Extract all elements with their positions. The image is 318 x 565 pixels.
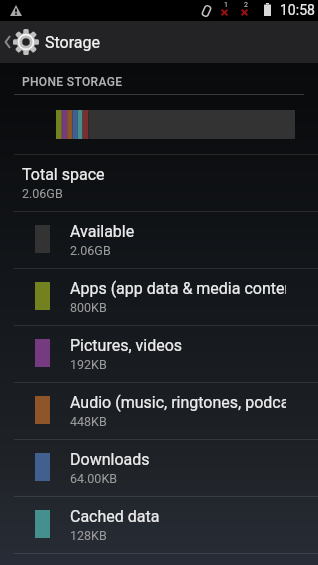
button[interactable]: Total space [0, 155, 318, 211]
staticText: Storage [45, 33, 100, 52]
staticText: 2.06GB [70, 243, 111, 258]
staticText: Cached data [70, 507, 160, 526]
staticText: Total space [22, 165, 105, 184]
staticText: 192KB [70, 357, 107, 372]
button[interactable]: Downloads [0, 440, 318, 496]
staticText: Downloads [70, 450, 150, 469]
staticText: 2 [244, 1, 248, 9]
staticText: 10:58 [280, 2, 315, 18]
staticText: 448KB [70, 414, 107, 429]
staticText: 128KB [70, 528, 107, 543]
button[interactable]: Apps (app data & media content) [0, 269, 318, 325]
staticText: Apps (app data & media content) [70, 279, 286, 298]
button[interactable]: Cached data [0, 497, 318, 553]
button[interactable]: Pictures, videos [0, 326, 318, 382]
staticText: 64.00KB [70, 471, 118, 486]
staticText: Audio (music, ringtones, podcasts) [70, 393, 286, 412]
staticText: 800KB [70, 300, 107, 315]
staticText: Pictures, videos [70, 336, 183, 355]
button[interactable]: Audio (music, ringtones, podcasts) [0, 383, 318, 439]
staticText: 1 [224, 1, 228, 9]
staticText: Available [70, 222, 135, 241]
button[interactable]: Available [0, 212, 318, 268]
staticText: 2.06GB [22, 186, 63, 201]
button[interactable]: Navigate up [0, 21, 318, 63]
staticText: PHONE STORAGE [22, 75, 123, 89]
